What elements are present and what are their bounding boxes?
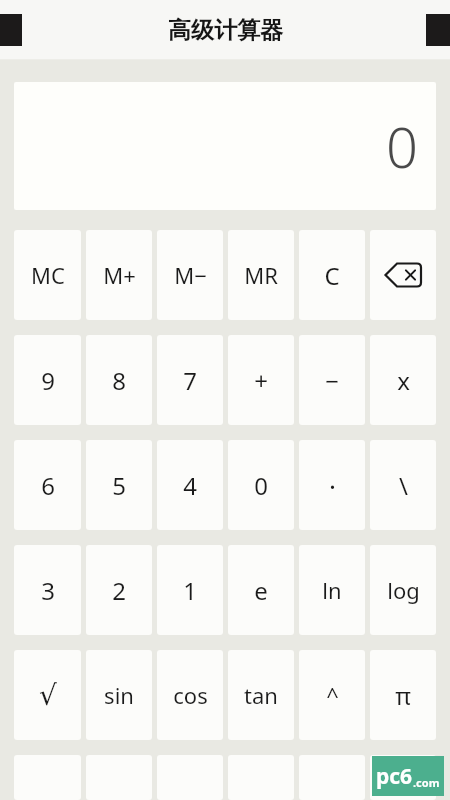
button[interactable]: cos xyxy=(157,650,223,740)
button[interactable]: MR xyxy=(228,230,294,320)
staticText: 7 xyxy=(183,364,197,397)
staticText: 6 xyxy=(41,469,55,502)
staticText: π xyxy=(395,679,411,712)
button[interactable]: ^ xyxy=(299,650,365,740)
button[interactable]: x xyxy=(370,335,436,425)
staticText: 5 xyxy=(112,469,126,502)
button[interactable]: 9 xyxy=(14,335,81,425)
button[interactable]: sin xyxy=(86,650,152,740)
staticText: + xyxy=(254,364,268,397)
staticText: 9 xyxy=(41,364,55,397)
button[interactable]: · xyxy=(299,440,365,530)
staticText: 4 xyxy=(183,469,197,502)
button[interactable]: e xyxy=(228,545,294,635)
button[interactable]: 7 xyxy=(157,335,223,425)
staticText: MC xyxy=(31,260,65,290)
staticText: · xyxy=(329,468,336,503)
button[interactable]: tan xyxy=(228,650,294,740)
staticText: log xyxy=(387,575,420,605)
button[interactable] xyxy=(370,755,436,800)
staticText: 1 xyxy=(183,574,197,607)
button[interactable]: − xyxy=(299,335,365,425)
button[interactable]: 0 xyxy=(228,440,294,530)
button[interactable]: ln xyxy=(299,545,365,635)
staticText: cos xyxy=(173,680,208,710)
staticText: 3 xyxy=(41,574,55,607)
staticText: MR xyxy=(244,260,278,290)
staticText: pc6 xyxy=(376,762,413,791)
staticText: − xyxy=(325,364,339,397)
staticText: 0 xyxy=(254,469,268,502)
button[interactable]: π xyxy=(370,650,436,740)
staticText: tan xyxy=(244,680,278,710)
staticText: \ xyxy=(399,469,408,502)
button[interactable]: √ xyxy=(14,650,81,740)
button[interactable]: log xyxy=(370,545,436,635)
button[interactable]: 8 xyxy=(86,335,152,425)
staticText: √ xyxy=(39,679,57,712)
staticText: C xyxy=(324,259,340,292)
button[interactable]: 1 xyxy=(157,545,223,635)
button[interactable]: 3 xyxy=(14,545,81,635)
button[interactable]: Backspace xyxy=(370,230,436,320)
staticText: M− xyxy=(174,260,207,290)
button[interactable]: C xyxy=(299,230,365,320)
staticText: 0 xyxy=(386,108,418,184)
staticText: x xyxy=(397,364,410,397)
button[interactable]: 5 xyxy=(86,440,152,530)
button[interactable]: 2 xyxy=(86,545,152,635)
button[interactable]: + xyxy=(228,335,294,425)
button[interactable]: \ xyxy=(370,440,436,530)
staticText: ln xyxy=(322,575,342,605)
button[interactable]: 4 xyxy=(157,440,223,530)
staticText: e xyxy=(254,574,268,607)
staticText: sin xyxy=(104,680,134,710)
staticText: 2 xyxy=(112,574,126,607)
staticText: 高级计算器 xyxy=(168,16,283,45)
button[interactable]: 6 xyxy=(14,440,81,530)
button[interactable]: M− xyxy=(157,230,223,320)
staticText: 8 xyxy=(112,364,126,397)
staticText: .com xyxy=(413,775,440,790)
staticText: ^ xyxy=(326,680,339,710)
button[interactable]: M+ xyxy=(86,230,152,320)
button[interactable]: MC xyxy=(14,230,81,320)
staticText: M+ xyxy=(103,260,136,290)
